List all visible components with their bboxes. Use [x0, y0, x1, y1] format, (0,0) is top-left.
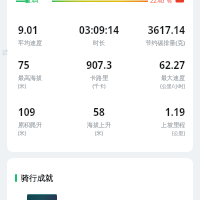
button[interactable]: 骑行成就	[7, 158, 193, 200]
staticText: (米)	[71, 130, 127, 137]
staticText: 时长	[71, 39, 127, 47]
staticText: 累积爬升	[18, 121, 71, 129]
staticText: 平均速度	[18, 39, 71, 47]
button[interactable]	[27, 194, 57, 200]
staticText: 75	[18, 58, 71, 72]
staticText: 最大速度	[127, 74, 185, 82]
staticText: 9.01	[18, 23, 71, 37]
staticText: 10.44	[24, 0, 39, 4]
staticText: 62.27	[127, 58, 185, 72]
staticText: 节约碳排量(克)	[127, 39, 185, 47]
staticText: 22.40 %	[150, 0, 172, 4]
staticText: (米)	[18, 83, 71, 90]
staticText: 1.19	[127, 105, 185, 119]
staticText: 58	[71, 105, 127, 119]
staticText: (米)	[18, 130, 71, 137]
staticText: 最高海拔	[18, 74, 71, 82]
staticText: (千卡)	[71, 83, 127, 90]
staticText: 907.3	[71, 58, 127, 72]
staticText: 上坡里程	[127, 121, 185, 129]
staticText: 3617.14	[127, 23, 185, 37]
staticText: 海拔上升	[71, 121, 127, 129]
staticText: 骑行成就	[21, 173, 53, 183]
staticText: (公里)	[127, 130, 185, 137]
staticText: 03:09:14	[71, 23, 127, 37]
staticText: 109	[18, 105, 71, 119]
staticText: 卡路里	[71, 74, 127, 82]
staticText: (公里/小时)	[127, 83, 185, 90]
